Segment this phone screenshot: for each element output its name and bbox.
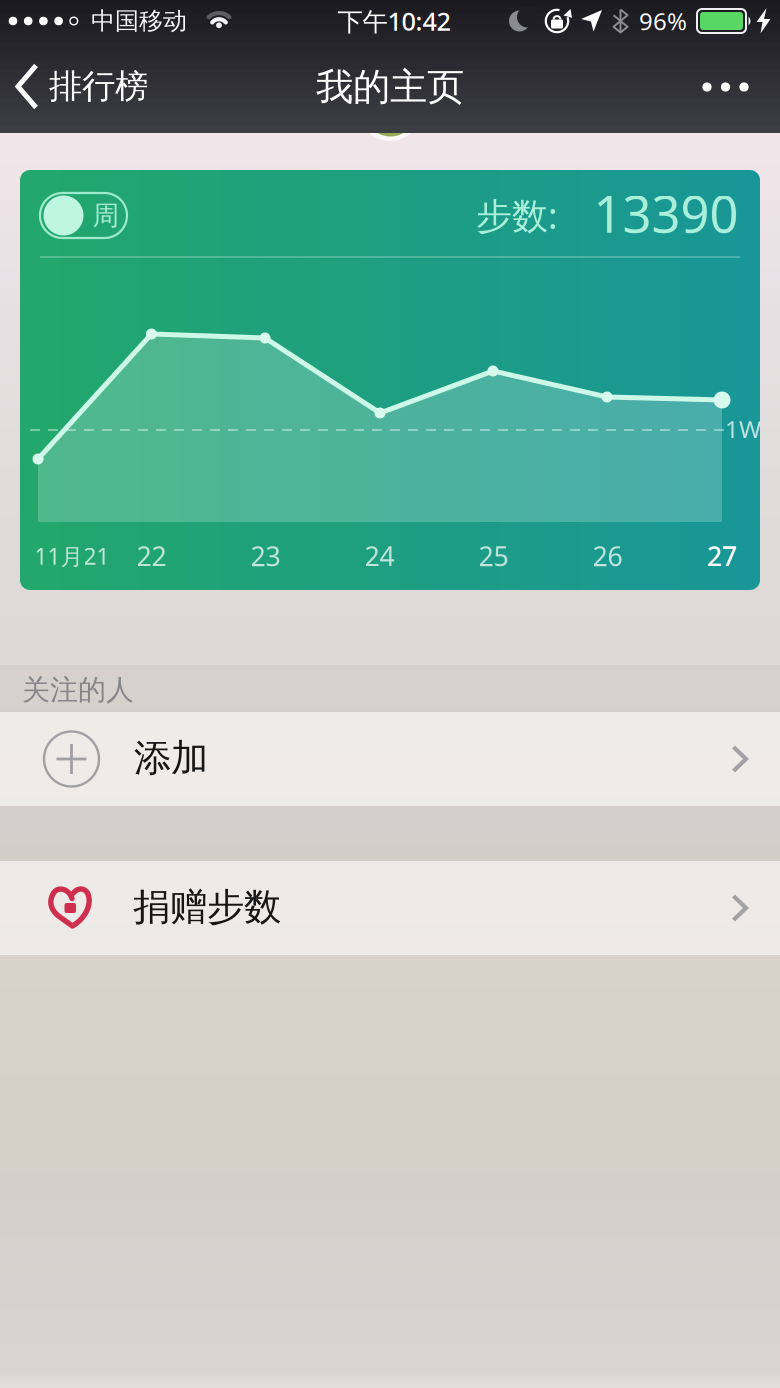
staticText: 捐赠步数 bbox=[133, 884, 281, 930]
button[interactable]: 切换周/月 bbox=[20, 170, 140, 250]
staticText: 排行榜 bbox=[49, 66, 148, 107]
staticText: 添加 bbox=[134, 735, 208, 781]
staticText: 步数: bbox=[476, 191, 558, 239]
staticText: 26 bbox=[592, 538, 622, 574]
staticText: 下午10:42 bbox=[337, 4, 450, 38]
staticText: 中国移动 bbox=[91, 6, 187, 36]
button[interactable]: 捐赠步数 bbox=[0, 861, 780, 955]
staticText: 23 bbox=[250, 538, 280, 574]
staticText: 96% bbox=[639, 5, 687, 37]
staticText: 周 bbox=[92, 199, 119, 232]
button[interactable]: 更多 bbox=[670, 40, 780, 133]
staticText: 24 bbox=[364, 538, 394, 574]
staticText: 13390 bbox=[593, 179, 738, 247]
staticText: 11月21 bbox=[34, 541, 109, 571]
staticText: 25 bbox=[478, 538, 508, 574]
staticText: 22 bbox=[136, 538, 166, 574]
staticText: 我的主页 bbox=[316, 64, 464, 110]
staticText: 27 bbox=[707, 538, 737, 574]
staticText: 1W bbox=[725, 413, 761, 445]
staticText: 关注的人 bbox=[22, 673, 134, 707]
button[interactable]: 返回排行榜 bbox=[0, 40, 148, 133]
button[interactable]: 添加 bbox=[0, 712, 780, 806]
